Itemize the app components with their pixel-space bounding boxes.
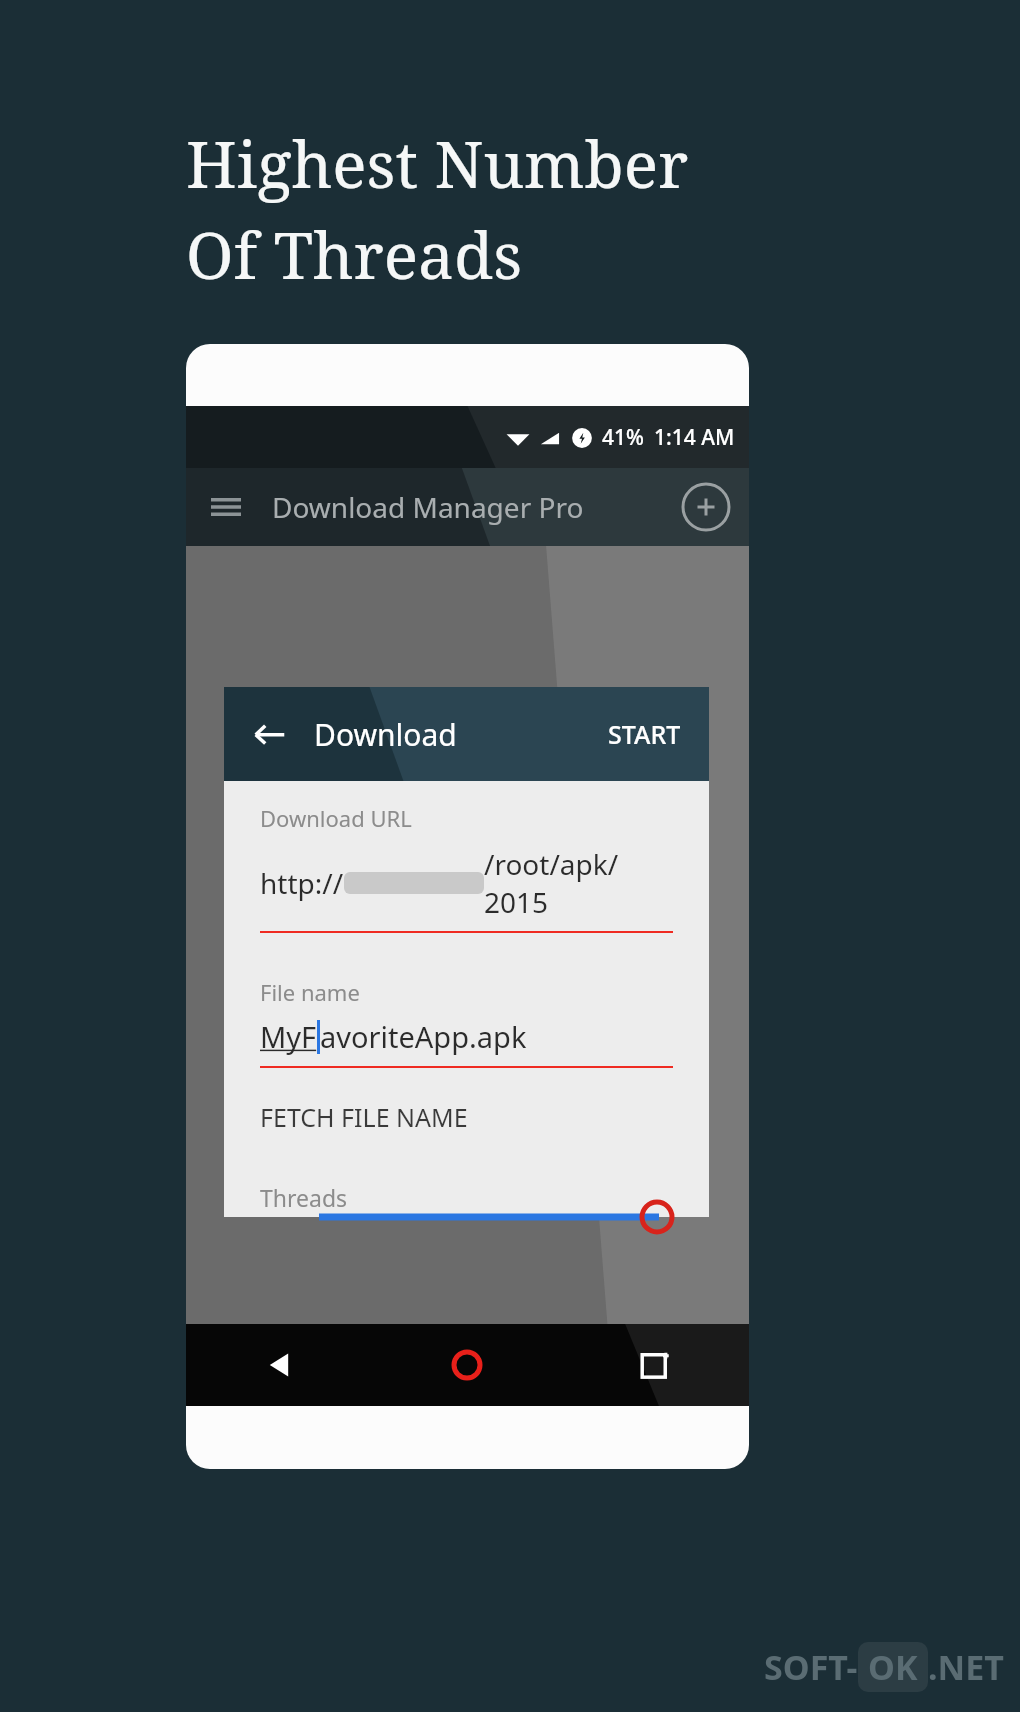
button[interactable]: Back bbox=[246, 710, 294, 758]
button[interactable]: START bbox=[602, 711, 687, 757]
staticText: Download URL bbox=[260, 803, 412, 833]
staticText: File name bbox=[260, 977, 360, 1007]
staticText: Download bbox=[314, 714, 457, 755]
staticText: http:// bbox=[260, 864, 344, 902]
button[interactable]: Home bbox=[373, 1324, 561, 1406]
staticText: Download Manager Pro bbox=[272, 488, 584, 526]
staticText: /root/apk/2015 bbox=[484, 845, 673, 921]
staticText: Threads bbox=[260, 1182, 348, 1213]
staticText: .NET bbox=[928, 1644, 1004, 1690]
button[interactable]: Add download bbox=[679, 480, 733, 534]
staticText: 1:14 AM bbox=[654, 423, 735, 452]
staticText: START bbox=[608, 717, 681, 751]
staticText: FETCH FILE NAME bbox=[260, 1100, 468, 1134]
staticText: 41% bbox=[602, 423, 644, 452]
button[interactable]: Recent apps bbox=[561, 1324, 749, 1406]
staticText: MyF bbox=[260, 1017, 317, 1056]
staticText: Of Threads bbox=[186, 211, 523, 298]
button[interactable]: Open navigation menu bbox=[202, 483, 250, 531]
staticText: Highest Number bbox=[186, 120, 689, 207]
staticText: avoriteApp.apk bbox=[320, 1017, 527, 1056]
staticText: OK bbox=[868, 1644, 918, 1690]
button[interactable]: Back bbox=[186, 1324, 373, 1406]
button[interactable]: FETCH FILE NAME bbox=[260, 1096, 468, 1138]
staticText: SOFT- bbox=[764, 1644, 858, 1690]
